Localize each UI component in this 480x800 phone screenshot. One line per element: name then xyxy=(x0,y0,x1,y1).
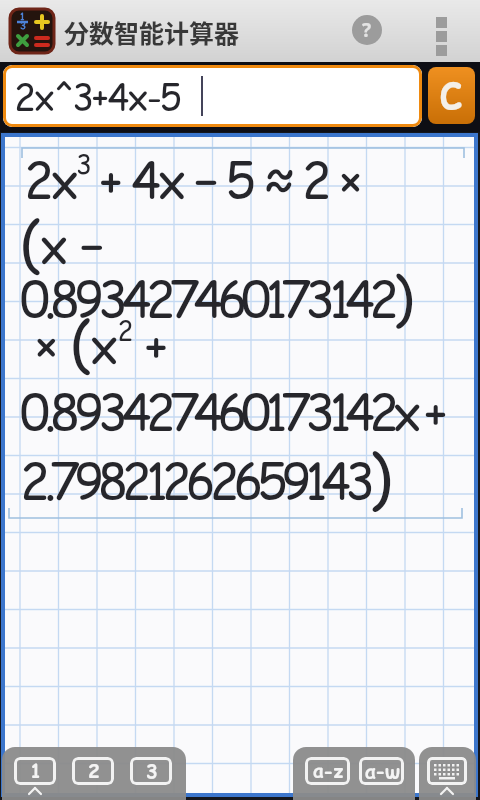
staticText: × (x2 + xyxy=(22,302,168,383)
button[interactable]: 2 xyxy=(72,757,114,785)
button[interactable]: 1 xyxy=(14,757,56,785)
staticText: 2 xyxy=(88,758,99,785)
button[interactable]: 1 xyxy=(10,9,54,53)
button[interactable]: α-ω xyxy=(359,757,404,785)
staticText: ? xyxy=(362,17,372,43)
staticText: 2x^3+4x-5 xyxy=(14,72,180,122)
staticText: 分数智能计算器 xyxy=(64,14,240,50)
staticText: a-z xyxy=(313,758,343,785)
staticText: 1 xyxy=(20,9,25,23)
button[interactable] xyxy=(436,17,447,56)
button[interactable]: ? xyxy=(352,15,382,45)
staticText: 3 xyxy=(146,758,157,785)
staticText: 0.893427460173142x + xyxy=(20,378,443,446)
button[interactable] xyxy=(427,757,467,785)
staticText: α-ω xyxy=(365,758,399,785)
staticText: 2.79821262659143) xyxy=(20,434,386,520)
staticText: 2x3 + 4x − 5 ≈ 2 × xyxy=(24,146,360,214)
button[interactable]: 3 xyxy=(130,757,172,785)
button[interactable]: 2x^3+4x-5 xyxy=(3,65,422,127)
staticText: 3 xyxy=(20,18,27,32)
staticText: C xyxy=(440,71,463,121)
staticText: 0.893427460173142) xyxy=(20,258,408,336)
button[interactable]: a-z xyxy=(305,757,350,785)
button[interactable]: C xyxy=(428,67,475,124)
staticText: (x − xyxy=(20,202,103,283)
staticText: 1 xyxy=(30,758,41,785)
